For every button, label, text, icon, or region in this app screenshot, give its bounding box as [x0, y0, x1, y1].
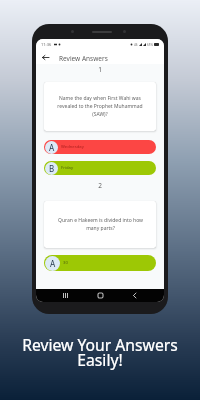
- staticText: Review Answers: [59, 54, 108, 63]
- button[interactable]: B: [44, 161, 156, 175]
- button[interactable]: A: [44, 140, 156, 154]
- staticText: 30: [63, 260, 68, 266]
- button[interactable]: Back: [38, 50, 52, 64]
- staticText: Review Your Answers Easily!: [0, 334, 200, 370]
- staticText: Quran e Hakeem is divided into how many …: [58, 217, 143, 232]
- staticText: 2: [36, 181, 164, 190]
- button[interactable]: Back: [129, 290, 140, 301]
- staticText: 65%: [147, 43, 153, 47]
- button[interactable]: Recents: [60, 290, 71, 301]
- staticText: 46: [134, 43, 138, 47]
- staticText: Friday: [61, 165, 74, 171]
- staticText: B: [49, 163, 55, 174]
- button[interactable]: A: [44, 255, 156, 271]
- staticText: Wednesday: [61, 144, 84, 150]
- staticText: 1: [36, 65, 164, 74]
- staticText: A: [50, 258, 56, 269]
- staticText: A: [49, 142, 55, 153]
- button[interactable]: Home: [95, 290, 106, 301]
- staticText: 11:36: [41, 42, 52, 47]
- staticText: Name the day when First Wahi was reveale…: [57, 95, 143, 118]
